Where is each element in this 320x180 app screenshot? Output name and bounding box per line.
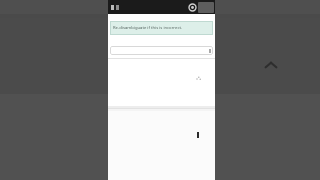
button[interactable]: Settings — [187, 2, 197, 12]
button[interactable]: Scroll up — [258, 52, 284, 78]
button[interactable]: Re-disambiguate if this is incorrect. — [110, 21, 213, 35]
button[interactable]: Search field — [110, 46, 213, 55]
staticText: Re-disambiguate if this is incorrect. — [113, 25, 183, 31]
